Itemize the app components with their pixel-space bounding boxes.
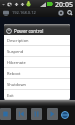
button[interactable]: App [60, 110, 70, 120]
staticText: Hibernate [7, 60, 26, 65]
staticText: Shutdown [7, 82, 26, 87]
button[interactable]: Previous [16, 108, 27, 120]
button[interactable]: Server [2, 9, 9, 16]
staticText: Exit [7, 93, 14, 98]
staticText: Reboot [7, 71, 21, 76]
button[interactable]: Search [66, 9, 74, 17]
button[interactable]: Pause [31, 108, 42, 120]
button[interactable]: Suspend [4, 46, 70, 57]
button[interactable]: Hibernate [4, 57, 70, 68]
staticText: 20:05 [55, 0, 73, 8]
button[interactable]: Description [4, 35, 70, 46]
staticText: 192.168.0.12 [12, 10, 36, 15]
staticText: Description [7, 38, 29, 43]
button[interactable]: Reboot [4, 68, 70, 79]
button[interactable]: Play [47, 108, 58, 120]
button[interactable]: Stop [0, 108, 11, 120]
button[interactable]: Power [57, 9, 65, 17]
staticText: Power control [14, 28, 44, 34]
staticText: Suspend [7, 49, 24, 54]
button[interactable]: Shutdown [4, 79, 70, 90]
button[interactable]: Exit [4, 90, 70, 100]
